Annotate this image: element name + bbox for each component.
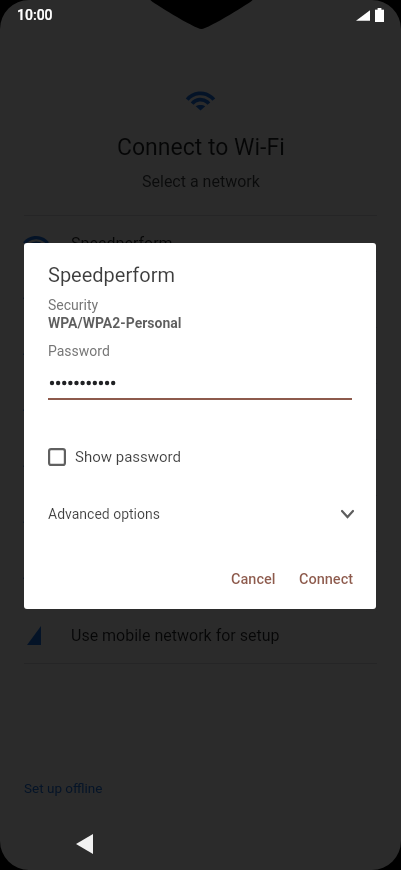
button[interactable]: Show password <box>46 446 184 468</box>
button[interactable]: Caffe Luna 5G <box>24 271 401 327</box>
staticText: Caffe Luna 5G <box>71 290 172 309</box>
button[interactable]: NETGEAR71 <box>24 495 401 551</box>
button[interactable]: Set up offline <box>24 780 103 796</box>
staticText: Set up offline <box>24 780 103 796</box>
staticText: Cancel <box>231 571 276 588</box>
staticText: Orbit Home <box>71 346 153 365</box>
staticText: Guest Network <box>71 458 177 477</box>
staticText: Speedperform <box>48 263 176 286</box>
staticText: WPA/WPA2-Personal <box>48 315 182 331</box>
staticText: Security <box>48 297 99 313</box>
button[interactable]: Back <box>66 826 102 862</box>
staticText: Advanced options <box>48 506 160 522</box>
staticText: Speedperform <box>71 234 173 253</box>
staticText: Select a network <box>142 172 260 191</box>
button[interactable]: Speedperform <box>24 215 401 271</box>
button[interactable]: Connect <box>291 565 362 594</box>
button[interactable]: Orbit Home <box>24 327 401 383</box>
button[interactable]: Pixel_2841 <box>24 551 401 607</box>
staticText: Password <box>48 343 110 359</box>
button[interactable]: TP-Link_A39C <box>24 383 401 439</box>
button[interactable]: Advanced options <box>48 497 354 531</box>
staticText: Use mobile network for setup <box>71 626 280 645</box>
staticText: 10:00 <box>17 7 53 23</box>
button[interactable]: Cancel <box>223 565 284 594</box>
button[interactable]: Guest Network <box>24 439 401 495</box>
button[interactable]: Use mobile network for setup <box>24 607 401 663</box>
staticText: Connect <box>299 571 354 588</box>
staticText: Connect to Wi-Fi <box>117 134 285 161</box>
staticText: NETGEAR71 <box>71 514 160 533</box>
staticText: Show password <box>75 448 182 466</box>
